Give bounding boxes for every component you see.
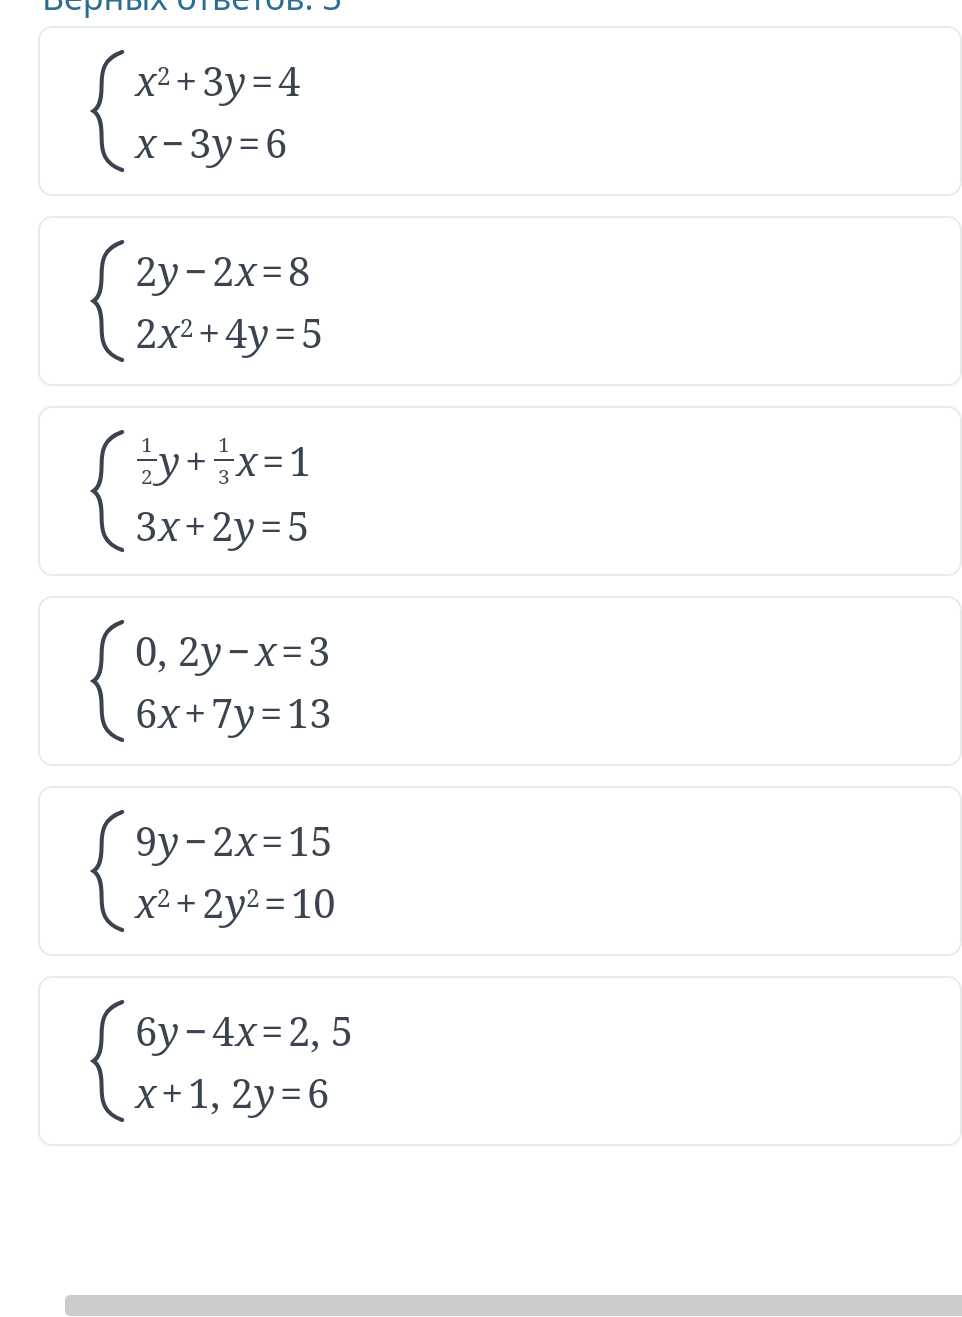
staticText: x: [236, 433, 258, 487]
button[interactable]: 1: [38, 406, 962, 576]
button[interactable]: 2: [38, 216, 962, 386]
staticText: x2: [135, 875, 171, 929]
staticText: y: [159, 433, 181, 487]
button[interactable]: 9: [38, 786, 962, 956]
staticText: 3: [308, 623, 331, 677]
staticText: x: [158, 685, 180, 739]
staticText: 6: [307, 1065, 330, 1119]
staticText: 3: [135, 498, 158, 552]
staticText: 10: [291, 875, 336, 929]
staticText: −: [184, 243, 208, 297]
staticText: −: [227, 623, 251, 677]
staticText: x: [135, 1065, 157, 1119]
staticText: y: [225, 53, 247, 107]
staticText: +: [198, 305, 221, 359]
staticText: 2: [141, 462, 153, 490]
staticText: x: [135, 115, 157, 169]
staticText: 4: [212, 1003, 235, 1057]
staticText: x: [158, 498, 180, 552]
staticText: y: [234, 498, 256, 552]
staticText: −: [161, 115, 185, 169]
staticText: x2: [158, 305, 194, 359]
staticText: =: [238, 115, 261, 169]
staticText: =: [261, 813, 284, 867]
staticText: y: [201, 623, 223, 677]
staticText: +: [184, 685, 207, 739]
staticText: =: [262, 433, 285, 487]
staticText: 2: [202, 875, 225, 929]
button[interactable]: 0, 2: [38, 596, 962, 766]
staticText: 4: [278, 53, 301, 107]
staticText: 0, 2: [135, 623, 201, 677]
staticText: =: [260, 685, 283, 739]
staticText: x: [255, 623, 277, 677]
staticText: 1: [218, 430, 230, 458]
staticText: Верных ответов: 3: [42, 0, 342, 20]
staticText: +: [175, 875, 198, 929]
staticText: y: [158, 1003, 180, 1057]
staticText: 2: [211, 498, 234, 552]
staticText: 6: [135, 685, 158, 739]
staticText: 2: [135, 243, 158, 297]
staticText: 3: [202, 53, 225, 107]
button[interactable]: x2: [38, 26, 962, 196]
staticText: 5: [287, 498, 310, 552]
staticText: +: [184, 498, 207, 552]
staticText: 2: [212, 243, 235, 297]
staticText: +: [185, 433, 208, 487]
staticText: =: [274, 305, 297, 359]
staticText: x: [235, 243, 257, 297]
staticText: y: [248, 305, 270, 359]
staticText: −: [184, 813, 208, 867]
staticText: −: [184, 1003, 208, 1057]
staticText: y: [212, 115, 234, 169]
staticText: 2: [212, 813, 235, 867]
staticText: 6: [135, 1003, 158, 1057]
staticText: 2, 5: [288, 1003, 354, 1057]
staticText: 9: [135, 813, 158, 867]
staticText: 1: [289, 433, 312, 487]
staticText: 15: [288, 813, 333, 867]
staticText: =: [264, 875, 287, 929]
staticText: 6: [265, 115, 288, 169]
staticText: x2: [135, 53, 171, 107]
staticText: =: [261, 243, 284, 297]
staticText: =: [280, 1065, 303, 1119]
staticText: +: [175, 53, 198, 107]
staticText: 13: [287, 685, 332, 739]
staticText: 3: [218, 462, 230, 490]
staticText: 1: [141, 430, 153, 458]
staticText: 7: [211, 685, 234, 739]
staticText: y: [158, 243, 180, 297]
staticText: y: [158, 813, 180, 867]
staticText: 3: [189, 115, 212, 169]
staticText: 4: [225, 305, 248, 359]
staticText: =: [281, 623, 304, 677]
button[interactable]: 6: [38, 976, 962, 1146]
staticText: y: [234, 685, 256, 739]
staticText: y2: [225, 875, 260, 929]
staticText: =: [251, 53, 274, 107]
staticText: x: [235, 813, 257, 867]
staticText: =: [261, 1003, 284, 1057]
staticText: 2: [135, 305, 158, 359]
staticText: y: [254, 1065, 276, 1119]
staticText: 5: [301, 305, 324, 359]
staticText: 1, 2: [188, 1065, 254, 1119]
staticText: +: [161, 1065, 184, 1119]
staticText: x: [235, 1003, 257, 1057]
staticText: 8: [288, 243, 311, 297]
staticText: =: [260, 498, 283, 552]
